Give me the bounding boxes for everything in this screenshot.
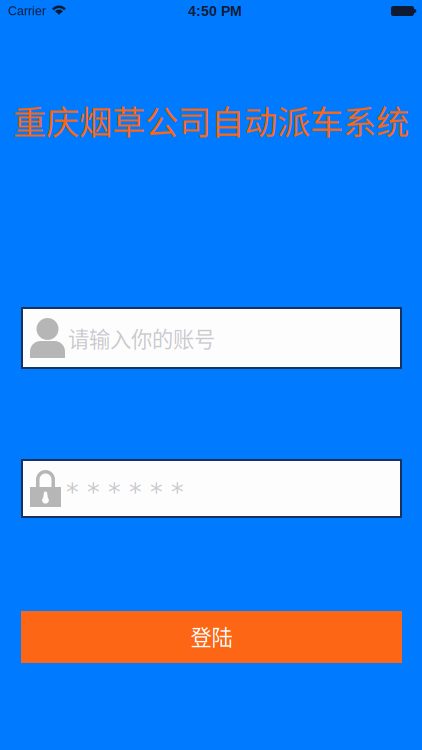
staticText: 登陆: [190, 621, 232, 651]
staticText: 4:50 PM: [188, 3, 242, 19]
staticText: Carrier: [8, 4, 46, 18]
staticText: 重庆烟草公司自动派车系统: [13, 96, 409, 144]
button[interactable]: 登陆: [21, 611, 402, 663]
button[interactable]: * * * * * *: [21, 459, 402, 518]
staticText: * * * * * *: [66, 477, 184, 506]
button[interactable]: 请输入你的账号: [21, 307, 402, 369]
staticText: 请输入你的账号: [68, 323, 215, 353]
